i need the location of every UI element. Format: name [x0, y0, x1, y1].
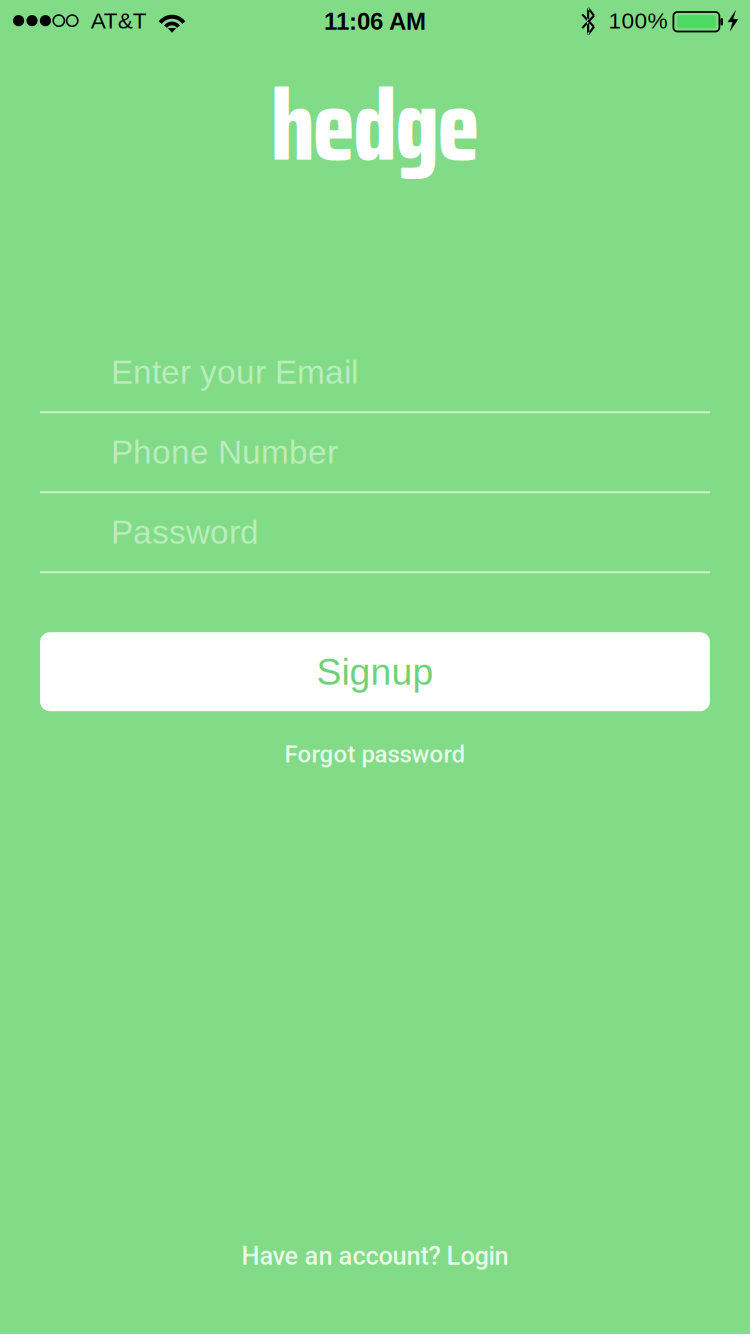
button[interactable]: Have an account? Login	[217, 1229, 532, 1283]
staticText: hedge	[271, 49, 479, 202]
staticText: AT&T	[91, 8, 147, 33]
button[interactable]: Password	[40, 493, 710, 573]
staticText: Have an account? Login	[241, 1241, 508, 1271]
staticText: Signup	[316, 651, 433, 692]
staticText: Password	[111, 514, 259, 551]
staticText: Enter your Email	[111, 354, 358, 391]
staticText: 100%	[608, 8, 667, 33]
button[interactable]: Signup	[40, 632, 710, 711]
button[interactable]: Enter your Email	[40, 333, 710, 413]
button[interactable]: Phone Number	[40, 413, 710, 493]
staticText: 11:06 AM	[324, 8, 426, 35]
button[interactable]: Forgot password	[260, 728, 489, 780]
staticText: Forgot password	[284, 740, 465, 768]
staticText: Phone Number	[111, 434, 338, 471]
